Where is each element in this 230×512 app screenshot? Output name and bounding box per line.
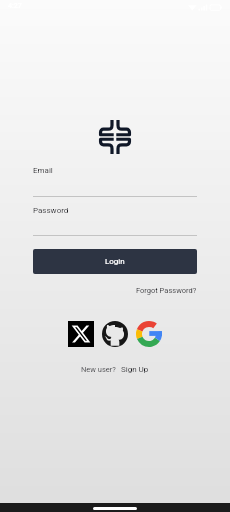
- staticText: Login: [105, 257, 125, 266]
- staticText: Password: [33, 206, 69, 215]
- button[interactable]: Sign in with X: [68, 321, 94, 347]
- button[interactable]: Sign in with Google: [136, 321, 162, 347]
- button[interactable]: Sign Up: [121, 365, 149, 374]
- staticText: Email: [33, 166, 53, 175]
- button[interactable]: Forgot Password?: [136, 286, 197, 295]
- staticText: New user?: [81, 365, 116, 374]
- button[interactable]: Login: [33, 249, 197, 274]
- button[interactable]: Sign in with GitHub: [102, 321, 128, 347]
